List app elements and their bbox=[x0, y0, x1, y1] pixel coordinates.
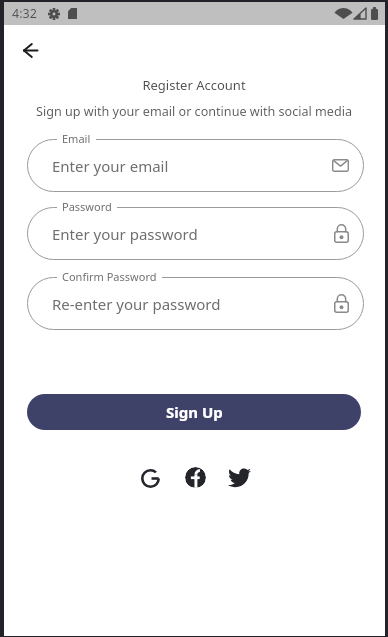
button[interactable]: Enter your password bbox=[27, 207, 364, 260]
staticText: Email bbox=[62, 131, 91, 146]
button[interactable]: Re-enter your password bbox=[27, 277, 364, 330]
staticText: Sign up with your email or continue with… bbox=[0, 103, 388, 120]
staticText: 4:32 bbox=[12, 5, 37, 22]
button[interactable] bbox=[185, 467, 206, 488]
button[interactable]: Enter your email bbox=[27, 139, 364, 192]
staticText: Register Account bbox=[0, 76, 388, 94]
staticText: Password bbox=[62, 199, 112, 214]
staticText: Re-enter your password bbox=[52, 294, 221, 314]
button[interactable] bbox=[141, 469, 160, 487]
staticText: Enter your password bbox=[52, 224, 198, 244]
button[interactable] bbox=[14, 36, 42, 64]
staticText: Sign Up bbox=[166, 402, 223, 422]
button[interactable]: Sign Up bbox=[27, 394, 361, 430]
staticText: Confirm Password bbox=[62, 269, 157, 284]
button[interactable] bbox=[228, 468, 251, 488]
staticText: Enter your email bbox=[52, 156, 169, 176]
